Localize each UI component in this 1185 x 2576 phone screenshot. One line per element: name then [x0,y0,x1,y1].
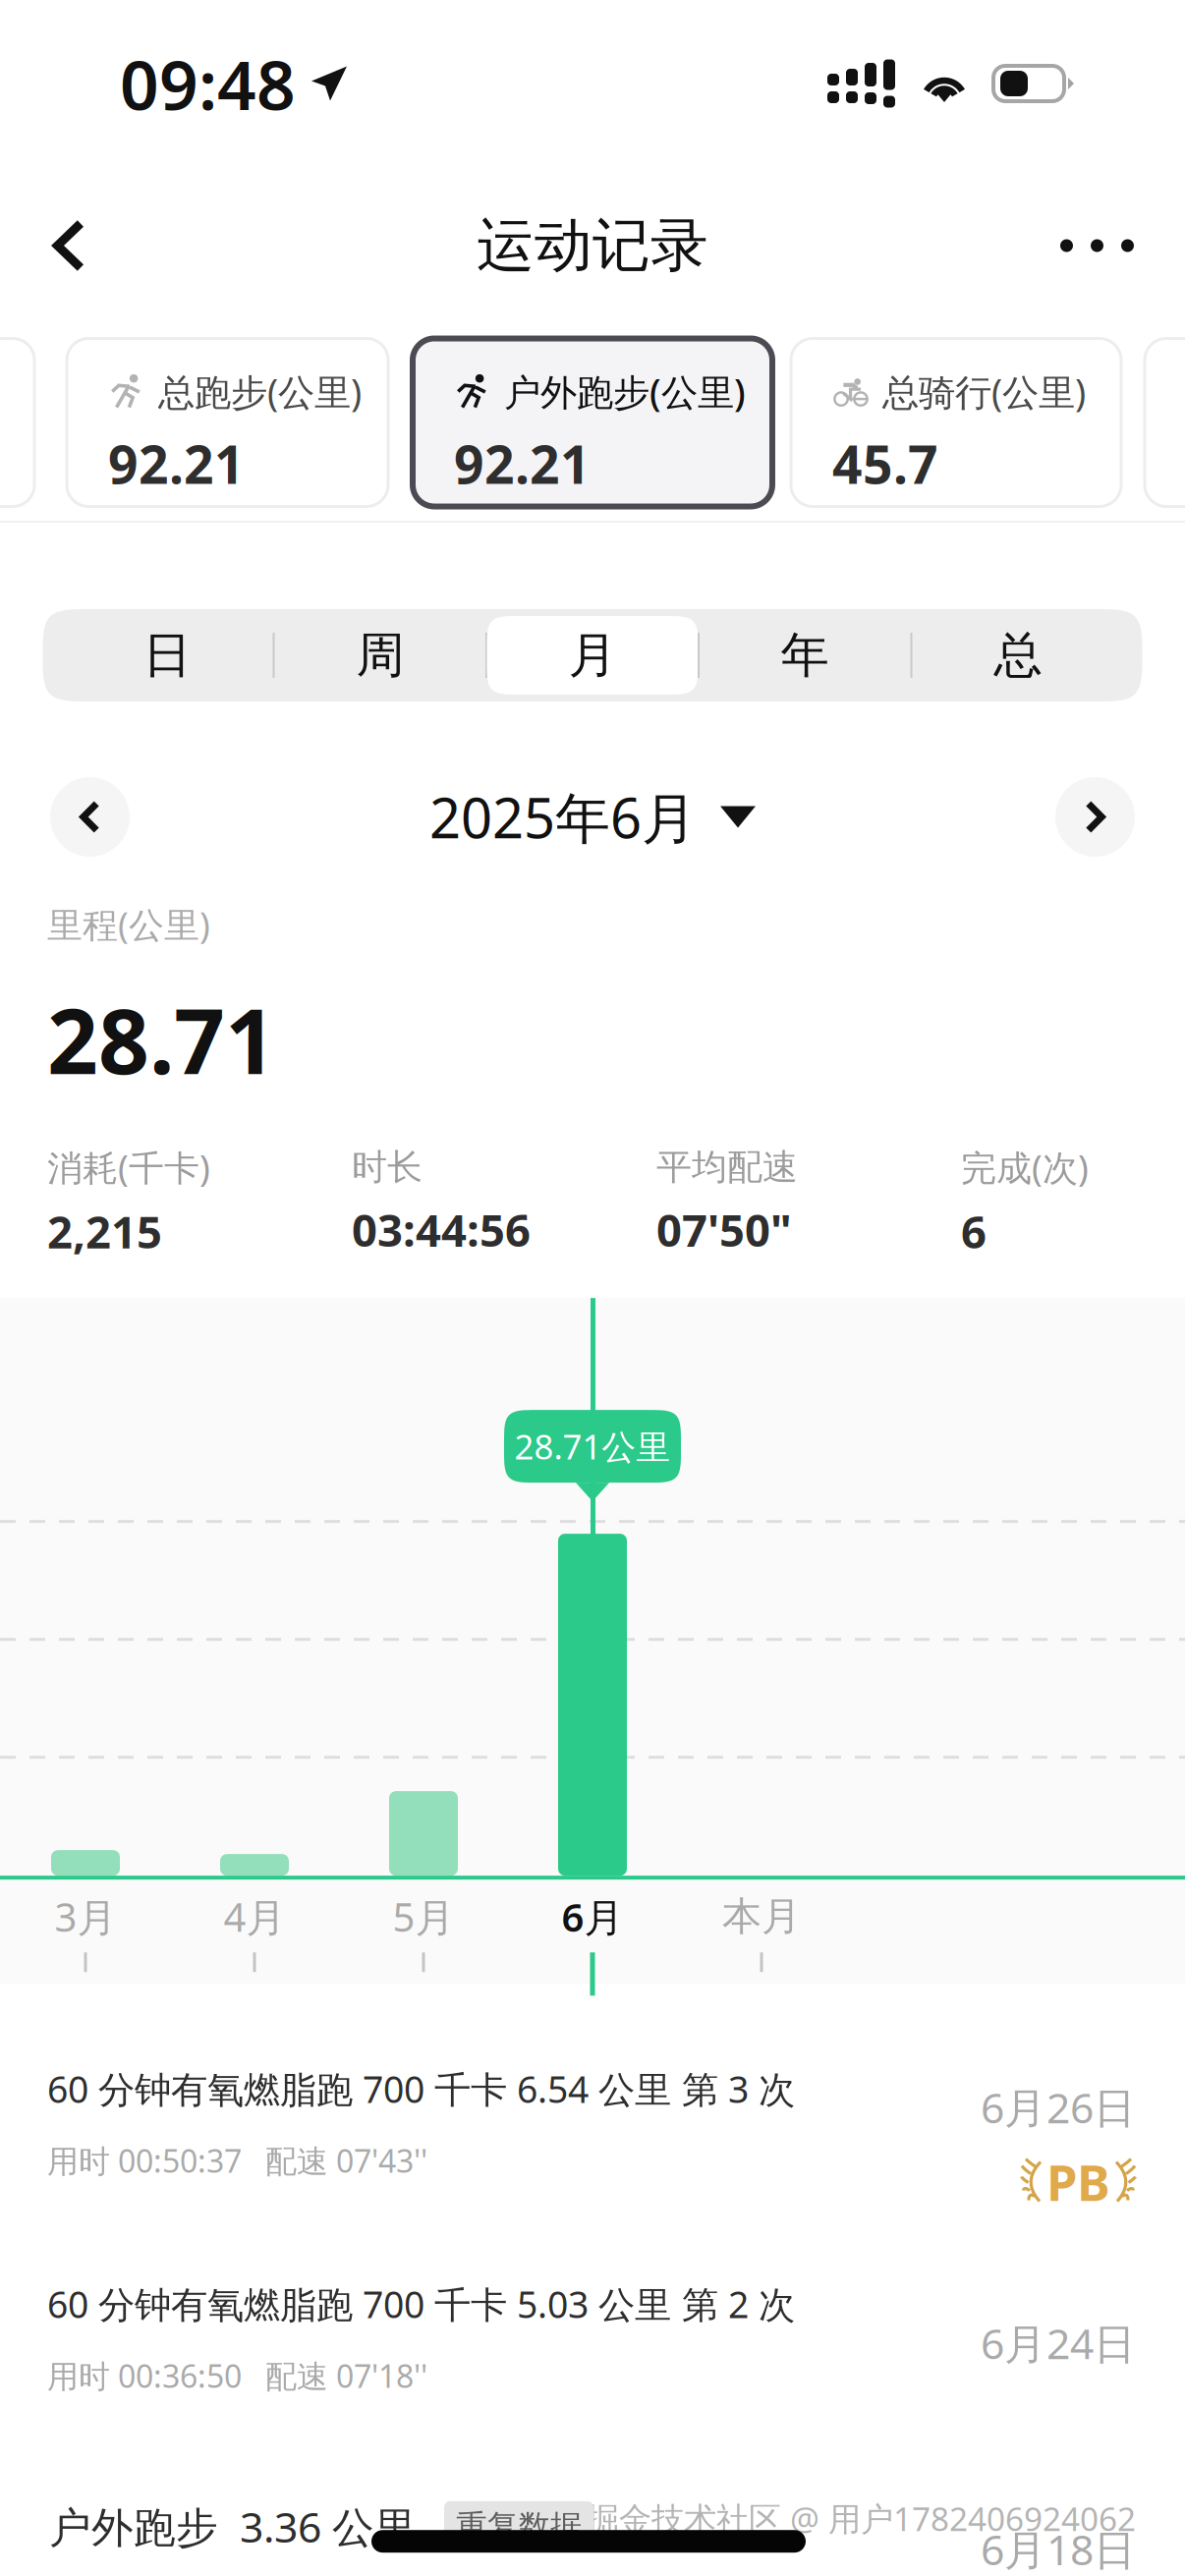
staticText: 45.7 [832,429,938,498]
staticText: 重复数据 [456,2507,582,2546]
staticText: 6月 [562,1890,623,1943]
button[interactable]: 月 [487,616,698,695]
staticText: 完成(次) [961,1144,1089,1191]
staticText: 92.21 [108,429,245,498]
staticText: 时长 [352,1146,423,1189]
button[interactable]: Back [53,198,143,293]
staticText: 60 分钟有氧燃脂跑 700 千卡 5.03 公里 第 2 次 [47,2279,795,2328]
button[interactable]: More options [1044,198,1134,293]
staticText: 户外跑步(公里) [504,367,746,416]
button[interactable]: 总 [912,616,1124,695]
staticText: 4月 [224,1890,285,1943]
staticText: 3月 [55,1890,116,1943]
button[interactable]: Previous month [50,777,130,857]
staticText: 掘金技术社区 @ 用户1782406924062 [587,2497,1136,2540]
staticText: 日 [143,626,191,685]
staticText: PB [1046,2149,1110,2215]
staticText: 92.21 [454,429,591,498]
staticText: 平均配速 [656,1146,798,1189]
button[interactable]: 周 [275,616,486,695]
staticText: 6月18日 [981,2521,1136,2576]
staticText: 28.71公里 [514,1424,671,1469]
staticText: 本月 [722,1892,801,1941]
staticText: 5月 [393,1890,454,1943]
button[interactable]: 户外跑步(公里) [413,338,772,506]
button[interactable]: 年 [699,616,910,695]
staticText: 6 [961,1202,987,1261]
staticText: 6月24日 [981,2315,1136,2371]
staticText: 运动记录 [477,210,708,281]
staticText: 年 [781,626,829,685]
staticText: 总跑步(公里) [158,367,362,416]
staticText: 里程(公里) [47,901,210,948]
staticText: 2025年6月 [429,780,697,853]
button[interactable]: 总骑行(公里) [791,338,1121,506]
staticText: 28.71 [47,980,276,1099]
staticText: 月 [568,626,617,685]
button[interactable]: 日 [61,616,273,695]
staticText: 消耗(千卡) [47,1144,210,1191]
button[interactable]: 60 分钟有氧燃脂跑 700 千卡 5.03 公里 第 2 次 [0,2250,1185,2397]
staticText: 总骑行(公里) [882,367,1086,416]
button[interactable]: 骑行(公里) [0,338,34,506]
button[interactable]: 总步行(公里) [1145,338,1185,506]
button[interactable]: 2025年6月 [429,780,756,853]
button[interactable]: Next month [1055,777,1135,857]
staticText: 03:44:56 [352,1200,531,1259]
button[interactable]: 60 分钟有氧燃脂跑 700 千卡 6.54 公里 第 3 次 [0,2001,1185,2215]
staticText: 6月26日 [981,2079,1136,2135]
staticText: 用时 00:50:37 配速 07'43'' [47,2140,427,2181]
staticText: 07'50" [656,1200,792,1259]
staticText: 周 [356,626,404,685]
staticText: 2,215 [47,1202,162,1261]
staticText: 户外跑步 3.36 公里 [49,2499,417,2554]
staticText: 60 分钟有氧燃脂跑 700 千卡 6.54 公里 第 3 次 [47,2064,795,2113]
staticText: 总 [994,626,1042,685]
button[interactable]: 总跑步(公里) [67,338,388,506]
staticText: 用时 00:36:50 配速 07'18'' [47,2355,427,2397]
staticText: 09:48 [120,38,296,129]
